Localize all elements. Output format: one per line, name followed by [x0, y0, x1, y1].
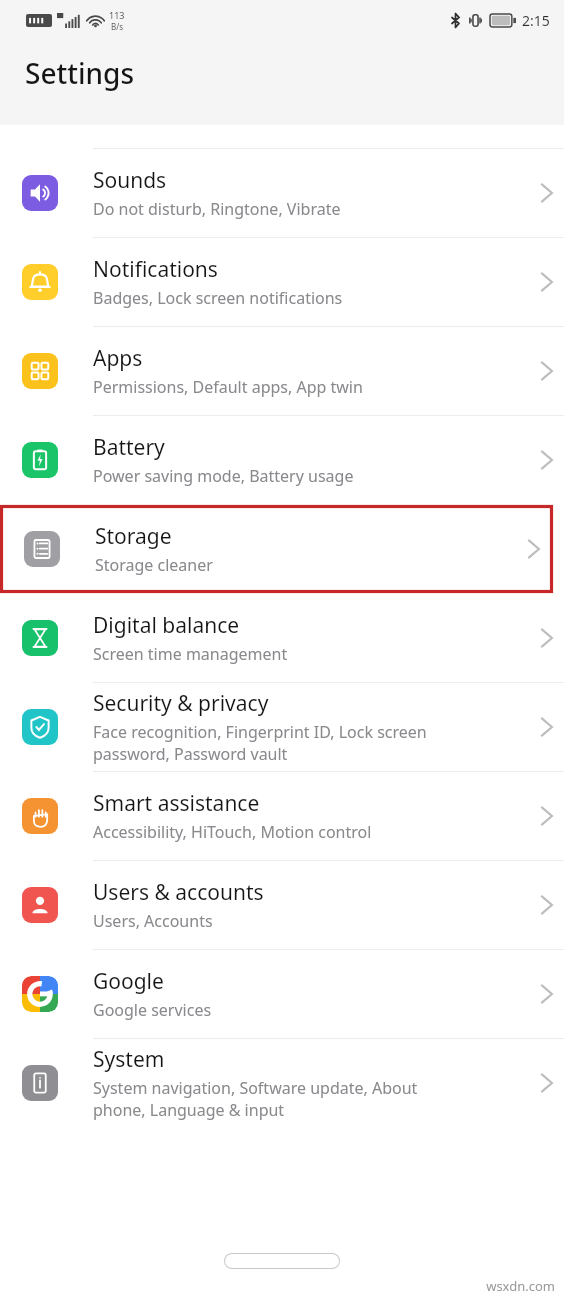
staticText: Security & privacy: [93, 689, 269, 718]
staticText: Storage cleaner: [95, 554, 213, 576]
button[interactable]: Security & privacy: [0, 683, 564, 771]
staticText: Badges, Lock screen notifications: [93, 287, 343, 309]
staticText: Google: [93, 967, 164, 996]
staticText: password, Password vault: [93, 743, 288, 765]
staticText: Google services: [93, 999, 212, 1021]
staticText: Screen time management: [93, 643, 288, 665]
button[interactable]: Digital balance: [0, 594, 564, 682]
staticText: System: [93, 1045, 165, 1074]
staticText: Digital balance: [93, 611, 240, 640]
button[interactable]: Notifications: [0, 238, 564, 326]
staticText: phone, Language & input: [93, 1099, 285, 1121]
staticText: Notifications: [93, 255, 218, 284]
staticText: Smart assistance: [93, 789, 260, 818]
staticText: Storage: [95, 522, 172, 551]
button[interactable]: Home gesture bar: [225, 1254, 339, 1268]
button[interactable]: Users & accounts: [0, 861, 564, 949]
button[interactable]: Sounds: [0, 149, 564, 237]
staticText: Apps: [93, 344, 143, 373]
staticText: Sounds: [93, 166, 167, 195]
button[interactable]: Battery: [0, 416, 564, 504]
staticText: Power saving mode, Battery usage: [93, 465, 354, 487]
staticText: Do not disturb, Ringtone, Vibrate: [93, 198, 341, 220]
staticText: 2:15: [522, 11, 550, 30]
button[interactable]: Storage: [2, 505, 551, 593]
staticText: Face recognition, Fingerprint ID, Lock s…: [93, 721, 427, 743]
button[interactable]: System: [0, 1039, 564, 1127]
button[interactable]: Google: [0, 950, 564, 1038]
button[interactable]: Apps: [0, 327, 564, 415]
button[interactable]: Smart assistance: [0, 772, 564, 860]
staticText: Settings: [25, 54, 135, 92]
staticText: Permissions, Default apps, App twin: [93, 376, 363, 398]
staticText: System navigation, Software update, Abou…: [93, 1077, 418, 1099]
staticText: B/s: [111, 21, 124, 32]
staticText: Users & accounts: [93, 878, 264, 907]
staticText: Users, Accounts: [93, 910, 213, 932]
staticText: 113: [109, 9, 125, 21]
staticText: wsxdn.com: [486, 1277, 555, 1295]
staticText: Battery: [93, 433, 165, 462]
staticText: Accessibility, HiTouch, Motion control: [93, 821, 372, 843]
